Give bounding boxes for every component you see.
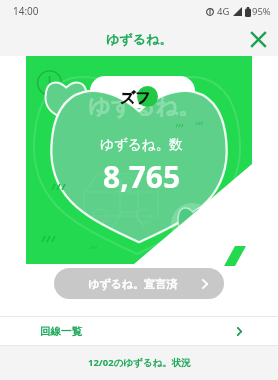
staticText: ズフ: [120, 89, 151, 108]
staticText: 4G: [217, 5, 230, 18]
staticText: 回線一覧: [40, 325, 82, 338]
button[interactable]: ゆずるね。宣言済: [54, 268, 224, 299]
button[interactable]: 回線一覧: [0, 317, 278, 345]
staticText: 8,765: [103, 156, 181, 197]
staticText: 12/02のゆずるね。状況: [88, 356, 191, 369]
staticText: ゆずるね。宣言済: [88, 277, 178, 291]
staticText: ゆずるね。: [88, 93, 201, 121]
button[interactable]: Close: [246, 27, 270, 51]
staticText: ゆずるね。: [106, 31, 173, 47]
staticText: 14:00: [13, 4, 39, 18]
staticText: ゆずるね。数: [100, 136, 183, 153]
staticText: 95%: [252, 5, 271, 18]
